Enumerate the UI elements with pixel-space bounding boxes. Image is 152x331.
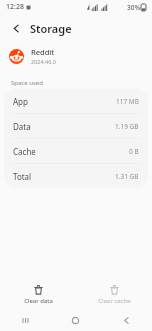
staticText: 2024.46.0: [31, 58, 56, 65]
staticText: Data: [13, 121, 31, 132]
button[interactable]: Cache: [4, 139, 148, 163]
staticText: 117 MB: [116, 97, 139, 106]
staticText: Cache: [13, 146, 36, 157]
button[interactable]: Recents: [0, 309, 50, 331]
button[interactable]: Home: [50, 309, 101, 331]
staticText: 12:28: [6, 2, 24, 12]
staticText: Total: [13, 171, 32, 182]
staticText: Clear data: [24, 297, 53, 305]
button[interactable]: Total: [4, 164, 148, 188]
button[interactable]: Back: [6, 18, 26, 38]
staticText: 30%: [127, 3, 140, 12]
staticText: Storage: [30, 21, 72, 36]
staticText: App: [13, 96, 28, 107]
button[interactable]: Back: [101, 309, 152, 331]
button[interactable]: App: [4, 89, 148, 113]
staticText: Clear cache: [98, 297, 131, 305]
staticText: Reddit: [31, 47, 55, 57]
button[interactable]: Clear data: [0, 281, 76, 308]
staticText: 0 B: [129, 147, 139, 156]
staticText: Space used: [11, 79, 43, 87]
button[interactable]: Data: [4, 114, 148, 138]
staticText: 1.19 GB: [115, 122, 139, 131]
button[interactable]: Clear cache: [76, 281, 152, 308]
staticText: 1.31 GB: [115, 172, 139, 181]
